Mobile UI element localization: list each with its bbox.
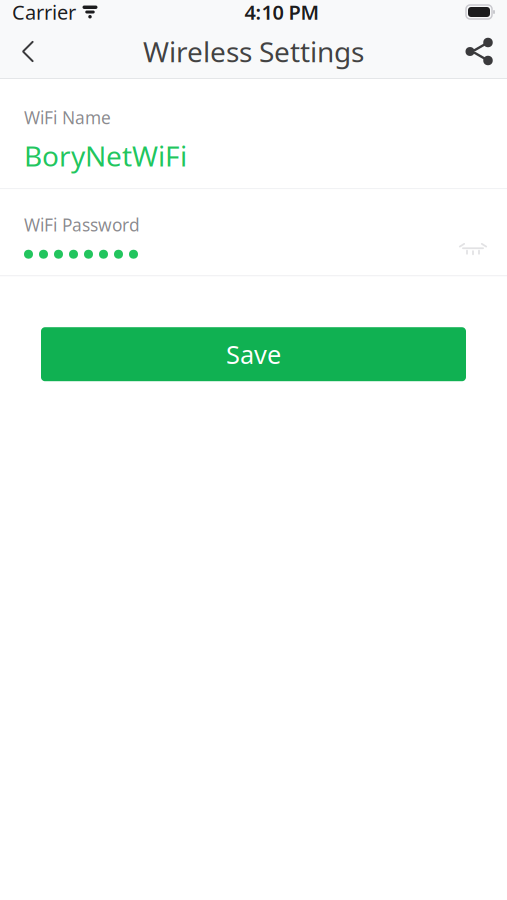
staticText: 4:10 PM: [244, 0, 319, 25]
button[interactable]: WiFi Name: [0, 79, 507, 188]
staticText: WiFi Password: [24, 213, 140, 236]
button[interactable]: Save: [41, 327, 466, 381]
staticText: Wireless Settings: [143, 33, 364, 70]
staticText: BoryNetWiFi: [24, 137, 187, 174]
staticText: WiFi Name: [24, 106, 111, 129]
staticText: Save: [226, 337, 281, 371]
staticText: Carrier: [12, 0, 76, 25]
button[interactable]: Back: [0, 24, 56, 79]
button[interactable]: Share: [451, 24, 507, 79]
button[interactable]: Show password: [451, 231, 495, 261]
